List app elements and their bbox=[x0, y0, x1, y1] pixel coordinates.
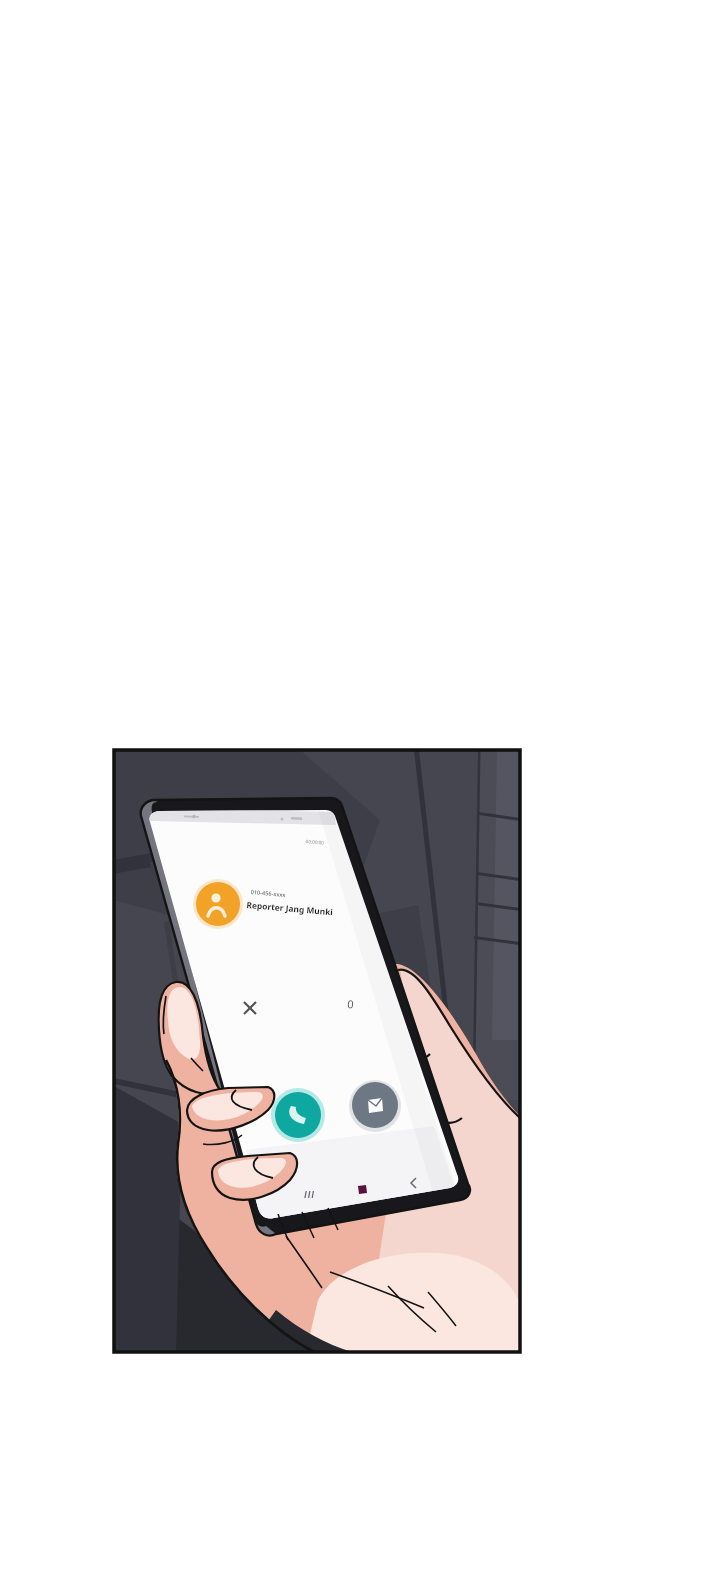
button[interactable]: Send message bbox=[349, 1079, 401, 1131]
button[interactable]: Comic panel: hand holding a phone with a… bbox=[0, 0, 720, 1583]
button[interactable]: Answer call bbox=[271, 1088, 325, 1142]
